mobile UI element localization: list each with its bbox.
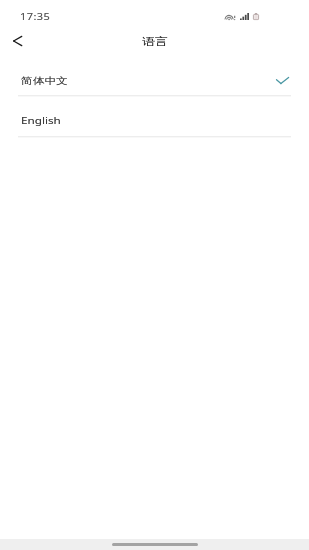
- staticText: 17:35: [20, 10, 51, 22]
- button[interactable]: Back: [0, 26, 34, 55]
- staticText: 语言: [142, 35, 168, 47]
- staticText: 17:35: [20, 10, 51, 22]
- staticText: 简体中文: [21, 75, 68, 87]
- staticText: 简体中文: [21, 75, 68, 87]
- staticText: English: [21, 114, 61, 126]
- button[interactable]: 简体中文: [0, 55, 309, 95]
- staticText: English: [21, 114, 61, 126]
- staticText: 语言: [142, 35, 168, 47]
- button[interactable]: English: [0, 97, 309, 136]
